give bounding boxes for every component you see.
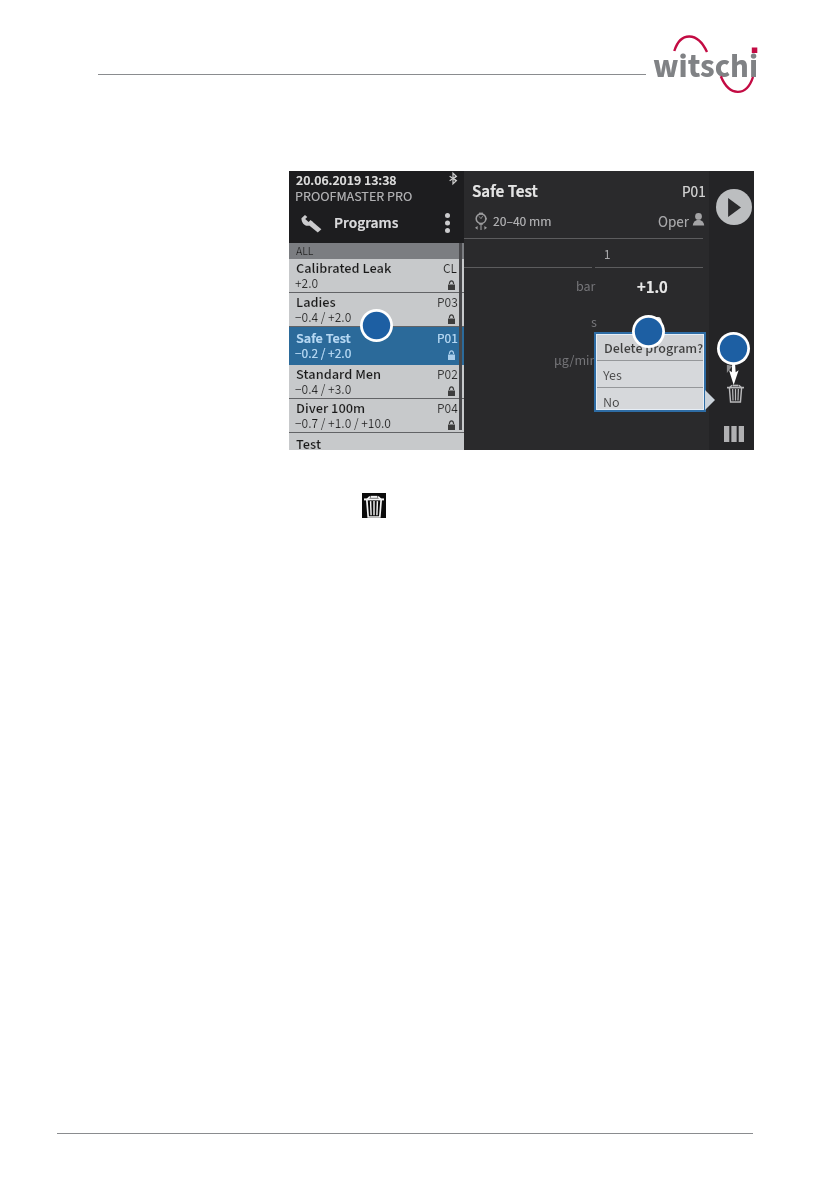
button[interactable]: Delete program [724,381,746,405]
button[interactable]: Ladies [289,293,464,327]
staticText: Yes [603,366,622,386]
button[interactable]: No [597,388,703,409]
button[interactable]: Statistics [721,422,747,445]
staticText: Diver 100m [296,398,366,418]
button[interactable]: Start test [716,189,752,225]
button[interactable]: Calibrated Leak [289,259,464,293]
staticText: Delete program? [604,339,704,359]
other: Delete icon [362,493,386,518]
staticText: Calibrated Leak [296,258,392,278]
staticText: +1.0 [637,276,668,300]
staticText: −0.7 / +1.0 / +10.0 [295,414,391,433]
button[interactable]: Safe Test [289,327,464,365]
button[interactable]: More options [437,213,457,233]
staticText: 1 [604,246,611,265]
button[interactable]: Standard Men [289,365,464,399]
staticText: P03 [437,293,458,312]
staticText: PROOFMASTER PRO [295,187,413,207]
staticText: µg/min [554,351,598,371]
staticText: Safe Test [296,328,351,348]
staticText: Test [296,434,322,451]
staticText: CL [443,259,458,278]
staticText: bar [576,277,596,297]
staticText: P01 [437,329,458,348]
staticText: Standard Men [296,364,382,384]
staticText: s [591,313,597,333]
staticText: 3.0 [640,312,663,336]
staticText: Safe Test [472,179,538,203]
staticText: +2.0 [295,274,319,293]
staticText: P01 [682,181,706,203]
staticText: P04 [437,399,458,418]
staticText: No [603,393,620,413]
staticText: 20.06.2019 13:38 [296,171,397,191]
staticText: P02 [437,365,458,384]
button[interactable]: Diver 100m [289,399,464,433]
button[interactable]: Programs [289,207,464,239]
staticText: ALL [296,243,314,259]
button[interactable]: Test [289,433,464,450]
staticText: Oper [658,212,689,233]
staticText: 20–40 mm [493,212,552,231]
staticText: Ladies [296,292,336,312]
staticText: −0.2 / +2.0 [295,344,352,363]
button[interactable]: Yes [597,361,703,387]
staticText: Programs [334,212,399,234]
staticText: −0.4 / +2.0 [295,308,352,327]
staticText: witschi [653,43,759,90]
staticText: −0.4 / +3.0 [295,380,352,399]
